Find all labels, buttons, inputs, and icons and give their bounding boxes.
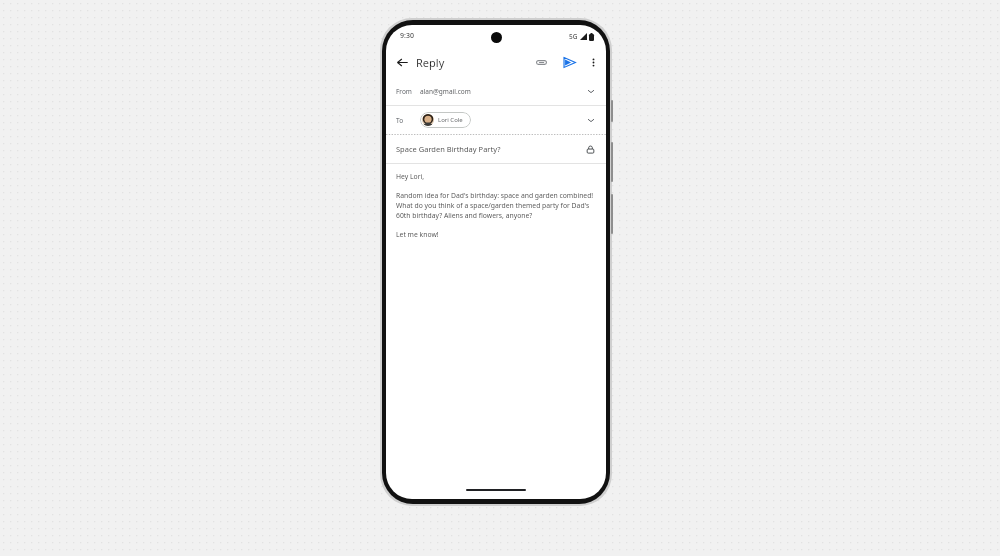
staticText: From (396, 87, 416, 96)
button[interactable]: Confidential mode (584, 143, 596, 155)
staticText: Let me know! (396, 230, 439, 239)
staticText: 5G (569, 32, 578, 41)
button[interactable]: Back (392, 52, 412, 72)
staticText: Hey Lori, (396, 172, 425, 181)
button[interactable]: More options (584, 53, 602, 71)
staticText: Reply (416, 55, 445, 70)
button[interactable]: Hey Lori, (396, 164, 596, 239)
staticText: Lori Cole (438, 116, 463, 124)
button[interactable]: Space Garden Birthday Party? (386, 135, 606, 164)
staticText: alan@gmail.com (420, 87, 471, 96)
staticText: 9:30 (400, 31, 414, 41)
staticText: To (396, 116, 416, 125)
staticText: Random idea for Dad's birthday: space an… (396, 191, 596, 220)
button[interactable]: Send (559, 52, 579, 72)
button[interactable]: From (386, 77, 606, 106)
button[interactable]: To (386, 106, 606, 135)
button[interactable]: Attach file (531, 52, 551, 72)
staticText: Space Garden Birthday Party? (396, 144, 584, 154)
button[interactable]: Lori Cole (420, 112, 471, 128)
